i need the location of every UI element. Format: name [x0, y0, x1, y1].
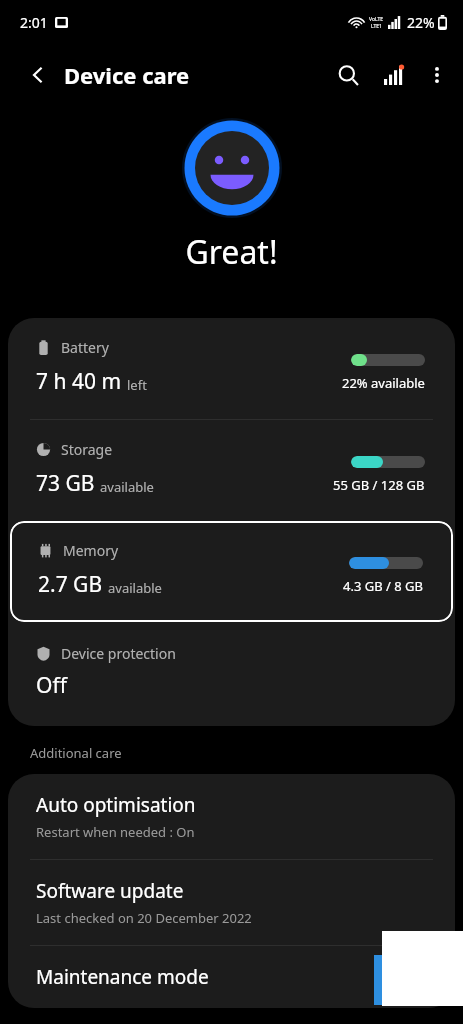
button[interactable]: Device protection: [8, 622, 455, 714]
button[interactable]: Software update: [8, 860, 455, 945]
staticText: 73 GB: [36, 469, 95, 498]
staticText: 55 GB / 128 GB: [333, 476, 425, 494]
staticText: 7 h 40 m: [36, 367, 122, 396]
staticText: Last checked on 20 December 2022: [36, 909, 252, 927]
staticText: Off: [36, 671, 67, 700]
staticText: Software update: [36, 878, 184, 904]
button[interactable]: Memory: [10, 521, 453, 622]
button[interactable]: Auto optimisation: [8, 774, 455, 859]
button[interactable]: More options: [417, 52, 457, 98]
staticText: 22%: [407, 13, 435, 32]
staticText: Device protection: [61, 644, 176, 663]
staticText: Restart when needed : On: [36, 823, 195, 841]
staticText: LTE1: [371, 23, 382, 30]
staticText: Storage: [61, 440, 113, 459]
button[interactable]: Maintenance mode: [8, 946, 455, 1008]
staticText: available: [100, 478, 154, 496]
staticText: left: [127, 376, 147, 394]
staticText: Great!: [185, 230, 278, 274]
staticText: 2:01: [20, 13, 48, 32]
staticText: 2.7 GB: [38, 570, 103, 599]
staticText: 4.3 GB / 8 GB: [343, 577, 423, 595]
button[interactable]: Storage: [8, 420, 455, 521]
staticText: Auto optimisation: [36, 792, 196, 818]
staticText: Device care: [64, 60, 190, 90]
staticText: VoLTE: [369, 16, 384, 23]
staticText: Memory: [63, 541, 119, 560]
button[interactable]: Search: [325, 52, 371, 98]
staticText: available: [108, 579, 162, 597]
button[interactable]: Battery: [8, 318, 455, 419]
staticText: Additional care: [30, 744, 122, 762]
button[interactable]: Back: [16, 53, 60, 97]
button[interactable]: Statistics: [371, 52, 417, 98]
staticText: 22% available: [342, 374, 425, 392]
staticText: Battery: [61, 338, 109, 357]
staticText: Maintenance mode: [36, 964, 209, 990]
